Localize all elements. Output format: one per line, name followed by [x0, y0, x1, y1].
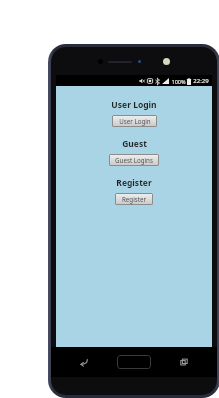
staticText: User Login: [119, 117, 151, 125]
button[interactable]: Guest Logins: [109, 154, 159, 166]
button[interactable]: Register: [115, 193, 153, 205]
staticText: 22:29: [193, 77, 209, 85]
staticText: Guest Logins: [115, 156, 153, 164]
staticText: 100%: [171, 78, 186, 85]
staticText: Guest: [122, 138, 147, 150]
button[interactable]: User Login: [112, 115, 157, 127]
staticText: Register: [122, 195, 146, 203]
button[interactable]: Home: [117, 355, 151, 369]
button[interactable]: Recents: [174, 353, 194, 371]
staticText: User Login: [111, 99, 157, 111]
staticText: Register: [116, 177, 152, 189]
button[interactable]: Back: [74, 353, 94, 371]
